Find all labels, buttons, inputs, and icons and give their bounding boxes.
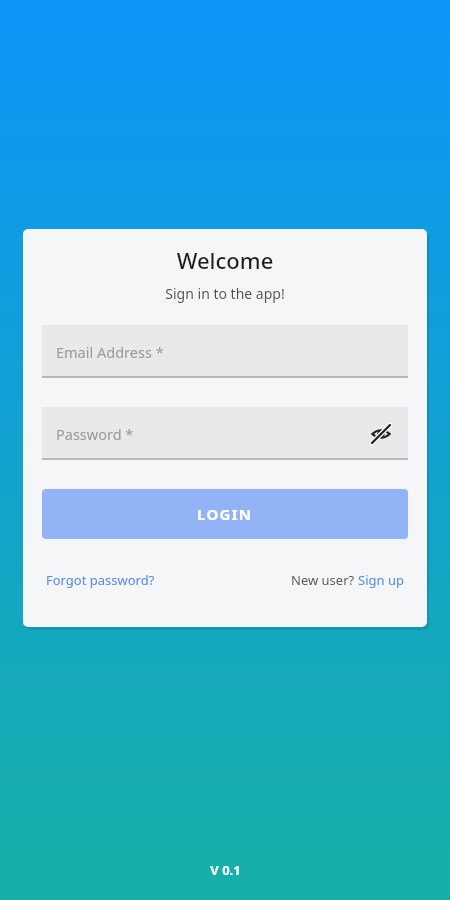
button[interactable]: Email Address * xyxy=(42,325,408,378)
staticText: Email Address * xyxy=(56,342,164,362)
staticText: New user? xyxy=(291,571,358,589)
staticText: Sign up xyxy=(358,571,404,589)
button[interactable]: Toggle password visibility xyxy=(368,421,394,447)
button[interactable]: Forgot password? xyxy=(46,571,155,589)
button[interactable]: LOGIN xyxy=(42,489,408,539)
staticText: LOGIN xyxy=(197,504,253,524)
button[interactable]: Sign up xyxy=(358,571,404,589)
staticText: Password * xyxy=(56,424,134,444)
staticText: Sign in to the app! xyxy=(23,284,427,303)
staticText: Forgot password? xyxy=(46,571,155,589)
button[interactable]: Password * xyxy=(42,407,408,460)
staticText: V 0.1 xyxy=(210,861,241,879)
staticText: Welcome xyxy=(23,245,427,275)
